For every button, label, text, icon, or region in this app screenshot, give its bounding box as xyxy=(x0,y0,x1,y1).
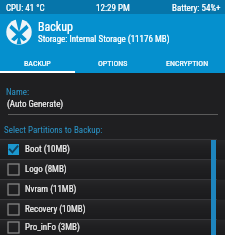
staticText: Boot (10MB) xyxy=(25,144,70,155)
staticText: ENCRYPTION xyxy=(166,59,209,68)
staticText: Storage: Internal Storage (11176 MB) xyxy=(38,34,170,45)
staticText: Nvram (11MB) xyxy=(25,184,77,195)
staticText: 12:29 PM xyxy=(96,3,130,14)
staticText: Recovery (10MB) xyxy=(25,204,86,215)
button[interactable]: Logo (8MB) xyxy=(0,160,225,179)
staticText: Logo (8MB) xyxy=(25,164,67,175)
staticText: Pro_inFo (3MB) xyxy=(25,222,80,233)
button[interactable]: Nvram (11MB) xyxy=(0,180,225,199)
staticText: Backup xyxy=(38,20,73,34)
staticText: OPTIONS xyxy=(98,59,128,68)
staticText: Select Partitions to Backup: xyxy=(4,125,103,136)
button[interactable]: ENCRYPTION xyxy=(150,50,225,73)
staticText: BACKUP xyxy=(24,59,51,68)
button[interactable]: BACKUP xyxy=(0,50,75,73)
button[interactable]: Recovery (10MB) xyxy=(0,200,225,219)
button[interactable]: Boot (10MB) xyxy=(0,140,225,159)
button[interactable]: Pro_inFo (3MB) xyxy=(0,220,225,235)
staticText: Battery: 54%+ xyxy=(172,3,221,14)
staticText: Name: xyxy=(6,87,29,98)
staticText: (Auto Generate) xyxy=(7,99,64,110)
button[interactable]: OPTIONS xyxy=(75,50,150,73)
staticText: CPU: 41 °C xyxy=(6,3,45,14)
